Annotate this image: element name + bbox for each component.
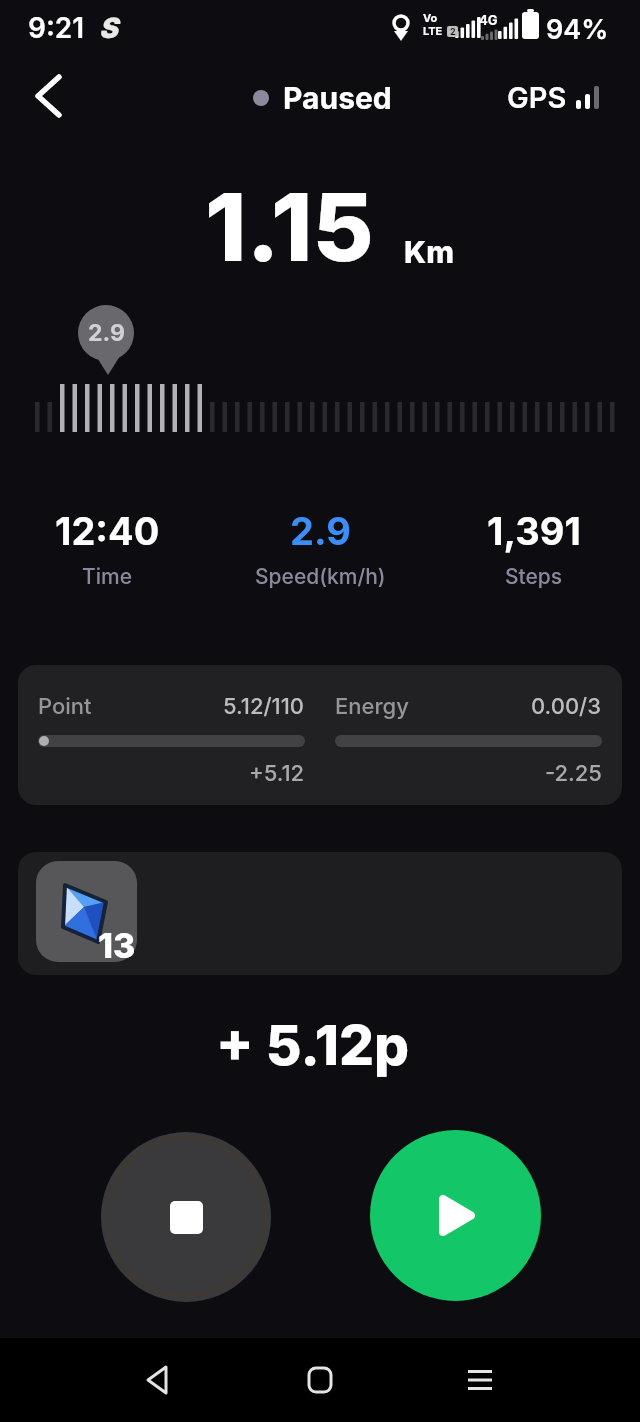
button[interactable] bbox=[20, 68, 76, 124]
staticText: GPS bbox=[507, 80, 567, 115]
staticText: +5.12 bbox=[249, 760, 305, 787]
button[interactable]: GPS bbox=[507, 80, 608, 115]
staticText: Steps bbox=[505, 564, 563, 589]
button[interactable]: Point bbox=[18, 665, 622, 805]
staticText: Vo bbox=[423, 11, 438, 24]
staticText: Time bbox=[82, 564, 132, 589]
staticText: + 5.12p bbox=[216, 1012, 410, 1079]
button[interactable] bbox=[101, 1132, 271, 1302]
staticText: -2.25 bbox=[545, 760, 602, 787]
staticText: 1.15 bbox=[205, 170, 374, 284]
staticText: 1,391 bbox=[487, 508, 581, 554]
staticText: Speed(km/h) bbox=[255, 564, 386, 589]
staticText: 9:21 bbox=[28, 11, 85, 45]
staticText: Paused bbox=[283, 80, 392, 116]
staticText: 2 bbox=[450, 26, 456, 37]
staticText: 5.12/110 bbox=[223, 693, 305, 720]
staticText: 0.00/3 bbox=[531, 693, 602, 720]
staticText: Point bbox=[38, 693, 92, 720]
button[interactable] bbox=[448, 1348, 512, 1412]
staticText: Km bbox=[404, 234, 454, 270]
button[interactable]: 13 bbox=[18, 852, 622, 975]
staticText: 12:40 bbox=[55, 508, 160, 554]
button[interactable] bbox=[126, 1348, 190, 1412]
staticText: 2.9 bbox=[88, 319, 125, 347]
staticText: LTE bbox=[423, 24, 443, 37]
staticText: 13 bbox=[98, 925, 136, 966]
staticText: 94% bbox=[546, 13, 609, 46]
button[interactable] bbox=[288, 1348, 352, 1412]
staticText: Energy bbox=[335, 693, 409, 720]
button[interactable] bbox=[370, 1130, 541, 1301]
staticText: 2.9 bbox=[290, 508, 351, 554]
staticText: 4G bbox=[479, 12, 498, 28]
staticText: S bbox=[99, 11, 118, 45]
